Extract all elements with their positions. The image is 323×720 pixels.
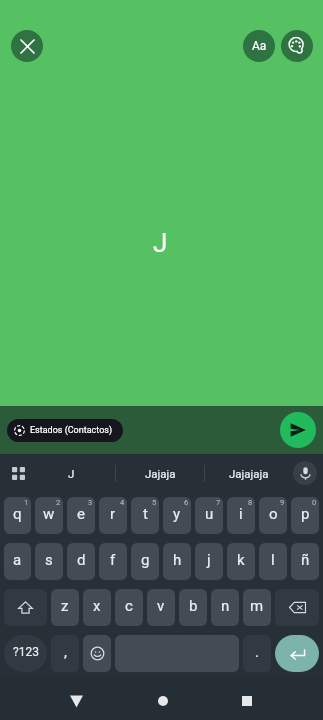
staticText: ?123 bbox=[13, 645, 39, 659]
staticText: 8 bbox=[248, 498, 253, 507]
staticText: Aa bbox=[252, 39, 267, 53]
button[interactable]: , bbox=[51, 635, 79, 672]
button[interactable]: i bbox=[227, 497, 255, 534]
button[interactable]: ?123 bbox=[4, 635, 47, 672]
button[interactable]: e bbox=[67, 497, 95, 534]
staticText: Jajajaja bbox=[229, 467, 269, 480]
staticText: x bbox=[93, 597, 101, 615]
staticText: n bbox=[221, 597, 230, 615]
staticText: r bbox=[110, 505, 116, 523]
staticText: 0 bbox=[312, 498, 317, 507]
staticText: ñ bbox=[301, 551, 310, 569]
staticText: b bbox=[189, 597, 198, 615]
button[interactable]: u bbox=[195, 497, 223, 534]
button[interactable]: l bbox=[259, 543, 287, 580]
button[interactable]: Voice input bbox=[293, 454, 323, 492]
button[interactable]: Colors bbox=[281, 30, 313, 62]
staticText: 5 bbox=[152, 498, 157, 507]
button[interactable]: h bbox=[163, 543, 191, 580]
staticText: 1 bbox=[24, 498, 29, 507]
staticText: q bbox=[13, 505, 22, 523]
staticText: 7 bbox=[216, 498, 221, 507]
staticText: j bbox=[207, 551, 211, 569]
button[interactable]: v bbox=[147, 589, 175, 626]
staticText: u bbox=[205, 505, 214, 523]
button[interactable]: n bbox=[211, 589, 239, 626]
button[interactable]: Emoji bbox=[83, 635, 111, 672]
staticText: 3 bbox=[88, 498, 93, 507]
staticText: l bbox=[271, 551, 275, 569]
button[interactable]: g bbox=[131, 543, 159, 580]
button[interactable]: a bbox=[4, 543, 31, 580]
staticText: , bbox=[64, 643, 67, 661]
button[interactable]: Send bbox=[280, 412, 316, 448]
button[interactable]: Text style bbox=[243, 30, 275, 62]
button[interactable]: b bbox=[179, 589, 207, 626]
staticText: . bbox=[255, 643, 259, 661]
button[interactable]: Jajajaja bbox=[205, 454, 293, 492]
staticText: o bbox=[269, 505, 278, 523]
staticText: c bbox=[125, 597, 133, 615]
button[interactable]: J bbox=[27, 454, 115, 492]
staticText: t bbox=[143, 505, 148, 523]
staticText: d bbox=[77, 551, 86, 569]
button[interactable]: p bbox=[291, 497, 319, 534]
staticText: m bbox=[250, 597, 264, 615]
staticText: 6 bbox=[184, 498, 189, 507]
button[interactable]: o bbox=[259, 497, 287, 534]
staticText: h bbox=[173, 551, 182, 569]
button[interactable]: Close bbox=[11, 30, 43, 62]
button[interactable]: k bbox=[227, 543, 255, 580]
button[interactable]: d bbox=[67, 543, 95, 580]
button[interactable]: x bbox=[83, 589, 111, 626]
staticText: s bbox=[45, 551, 53, 569]
button[interactable]: Estados (Contactos) bbox=[7, 419, 123, 442]
button[interactable]: c bbox=[115, 589, 143, 626]
button[interactable]: w bbox=[35, 497, 63, 534]
staticText: a bbox=[13, 551, 22, 569]
staticText: J bbox=[153, 228, 168, 258]
button[interactable]: f bbox=[99, 543, 127, 580]
button[interactable]: Recents bbox=[236, 690, 258, 712]
staticText: v bbox=[157, 597, 165, 615]
button[interactable]: t bbox=[131, 497, 159, 534]
staticText: e bbox=[77, 505, 85, 523]
button[interactable]: Back bbox=[65, 690, 87, 712]
button[interactable]: Enter bbox=[275, 635, 319, 672]
staticText: 9 bbox=[280, 498, 285, 507]
staticText: J bbox=[68, 467, 75, 480]
button[interactable]: Home bbox=[152, 690, 174, 712]
button[interactable]: q bbox=[4, 497, 31, 534]
button[interactable]: Backspace bbox=[275, 589, 319, 626]
staticText: p bbox=[301, 505, 310, 523]
button[interactable]: r bbox=[99, 497, 127, 534]
staticText: z bbox=[61, 597, 69, 615]
staticText: w bbox=[43, 505, 55, 523]
staticText: 2 bbox=[56, 498, 61, 507]
button[interactable]: m bbox=[243, 589, 271, 626]
button[interactable]: . bbox=[243, 635, 271, 672]
button[interactable]: s bbox=[35, 543, 63, 580]
staticText: y bbox=[173, 505, 181, 523]
staticText: f bbox=[110, 551, 116, 569]
button[interactable]: j bbox=[195, 543, 223, 580]
button[interactable]: Jajaja bbox=[116, 454, 204, 492]
staticText: k bbox=[237, 551, 245, 569]
button[interactable]: z bbox=[51, 589, 79, 626]
button[interactable]: Toolbar bbox=[0, 454, 27, 492]
staticText: g bbox=[141, 551, 150, 569]
staticText: Estados (Contactos) bbox=[30, 425, 113, 436]
button[interactable]: Shift bbox=[4, 589, 47, 626]
staticText: i bbox=[239, 505, 243, 523]
button[interactable]: ñ bbox=[291, 543, 319, 580]
staticText: 4 bbox=[120, 498, 125, 507]
button[interactable]: y bbox=[163, 497, 191, 534]
staticText: Jajaja bbox=[145, 467, 176, 480]
